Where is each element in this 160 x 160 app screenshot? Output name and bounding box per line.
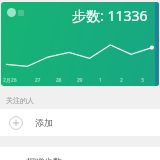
button[interactable]: Profile [7, 8, 24, 17]
staticText: 关注的人 [6, 96, 34, 105]
staticText: 3 [132, 77, 153, 84]
staticText: 27 [27, 77, 48, 84]
staticText: 29 [69, 77, 90, 84]
staticText: 2 [111, 77, 132, 84]
button[interactable]: Profile [1, 2, 159, 86]
staticText: 28 [48, 77, 69, 84]
staticText: 添加 [35, 117, 53, 128]
staticText: 步数: 11336 [72, 6, 148, 25]
staticText: 捐赠步数 [26, 156, 62, 160]
button[interactable]: 添加 [0, 109, 160, 136]
button[interactable]: 捐赠步数 [0, 147, 160, 160]
staticText: 1 [90, 77, 111, 84]
staticText: 2月26 [3, 77, 27, 84]
